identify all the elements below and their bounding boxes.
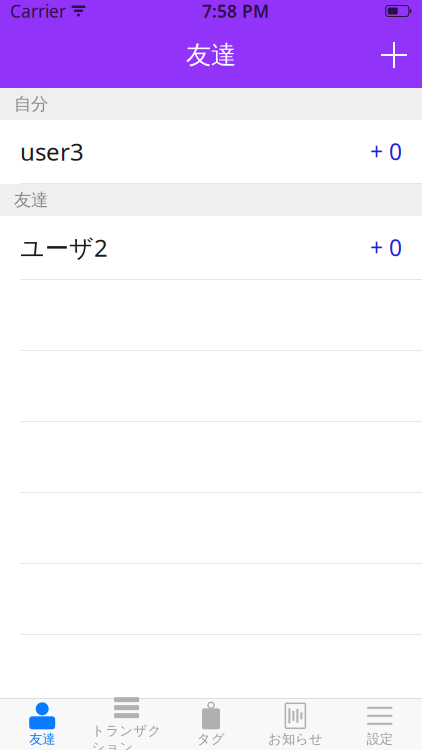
- button[interactable]: トランザクション: [84, 699, 169, 749]
- staticText: お知らせ: [268, 731, 323, 747]
- staticText: 自分: [14, 93, 48, 115]
- button[interactable]: Add friend: [372, 33, 416, 77]
- staticText: + 0: [370, 136, 402, 166]
- staticText: 設定: [367, 731, 393, 747]
- staticText: 7:58 PM: [202, 0, 269, 22]
- button[interactable]: ユーザ2: [0, 216, 422, 280]
- button[interactable]: 友達: [0, 699, 84, 749]
- staticText: トランザクション: [92, 723, 162, 750]
- staticText: + 0: [370, 232, 402, 262]
- staticText: user3: [20, 136, 84, 167]
- staticText: ユーザ2: [20, 232, 108, 263]
- staticText: 友達: [186, 39, 236, 70]
- button[interactable]: お知らせ: [253, 699, 338, 749]
- button[interactable]: 設定: [338, 699, 422, 749]
- button[interactable]: user3: [0, 120, 422, 184]
- button[interactable]: タグ: [169, 699, 253, 749]
- staticText: 友達: [14, 189, 48, 211]
- staticText: 友達: [29, 731, 55, 747]
- staticText: タグ: [197, 731, 225, 747]
- staticText: Carrier: [10, 0, 66, 22]
